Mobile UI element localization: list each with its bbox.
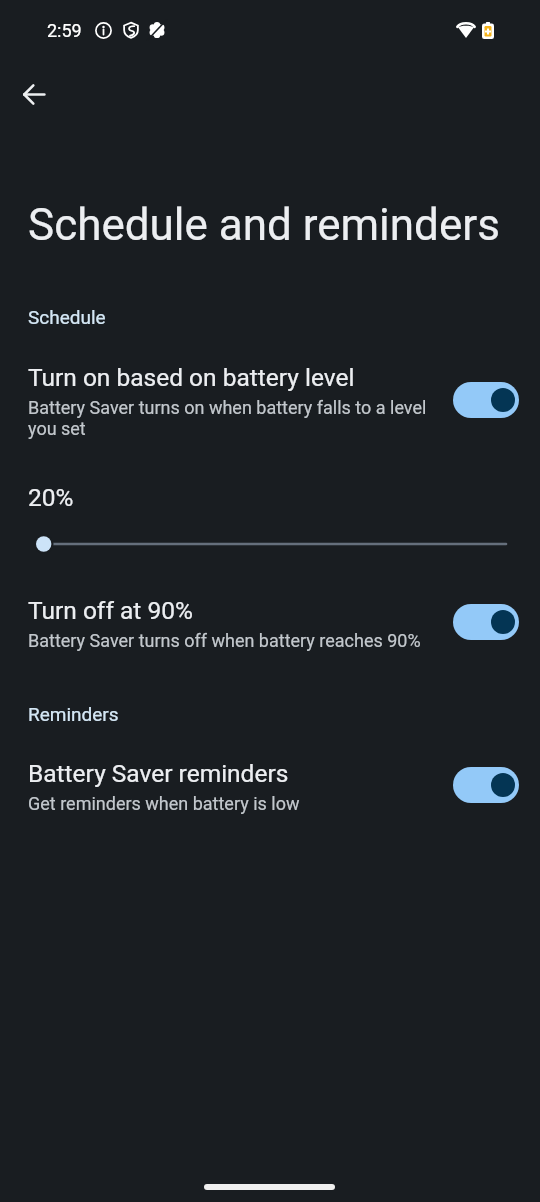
staticText: Turn on based on battery level xyxy=(28,363,355,392)
staticText: Battery Saver turns on when battery fall… xyxy=(28,397,432,440)
staticText: Reminders xyxy=(28,703,119,725)
button[interactable]: Turn off at 90%, on xyxy=(453,604,519,640)
staticText: Battery Saver reminders xyxy=(28,759,289,788)
staticText: 2:59 xyxy=(47,20,82,41)
button[interactable]: Turn on based on battery level, on xyxy=(453,382,519,418)
button[interactable]: Battery Saver reminders, on xyxy=(453,767,519,803)
button[interactable]: Turn on based on battery level xyxy=(0,352,540,448)
button[interactable]: Battery level, 20 percent xyxy=(0,530,540,558)
staticText: Schedule xyxy=(28,306,106,328)
button[interactable]: Navigate up xyxy=(10,70,58,118)
button[interactable]: Turn off at 90% xyxy=(0,585,540,659)
staticText: Turn off at 90% xyxy=(28,596,193,625)
button[interactable]: Battery Saver reminders xyxy=(0,748,540,822)
staticText: Schedule and reminders xyxy=(28,199,500,251)
staticText: 20% xyxy=(28,483,74,512)
staticText: Get reminders when battery is low xyxy=(28,793,300,814)
staticText: Battery Saver turns off when battery rea… xyxy=(28,630,421,651)
